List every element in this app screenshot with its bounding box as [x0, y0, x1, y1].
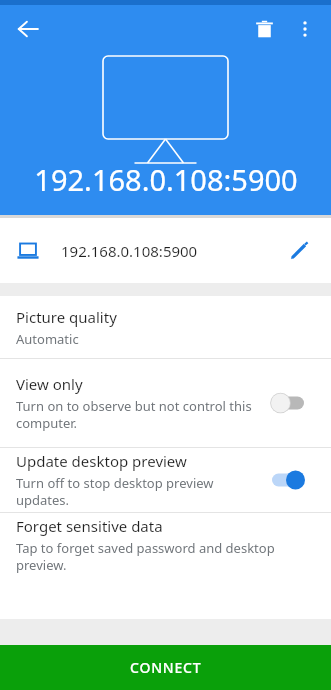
button[interactable]: Update desktop preview — [0, 448, 331, 512]
staticText: Automatic — [16, 330, 79, 348]
staticText: Turn on to observe but not control this … — [16, 397, 252, 432]
button[interactable]: Delete — [243, 8, 285, 50]
staticText: 192.168.0.108:5900 — [61, 241, 198, 261]
staticText: View only — [16, 374, 83, 394]
button[interactable]: CONNECT — [0, 645, 331, 690]
staticText: Turn off to stop desktop preview updates… — [16, 474, 257, 509]
button[interactable]: 192.168.0.108:5900 — [0, 218, 331, 283]
staticText: Update desktop preview — [16, 451, 187, 471]
button[interactable]: Off — [269, 389, 315, 417]
button[interactable]: Picture quality — [0, 296, 331, 358]
staticText: CONNECT — [130, 658, 202, 677]
staticText: 192.168.0.108:5900 — [34, 160, 298, 199]
staticText: Forget sensitive data — [16, 516, 163, 536]
button[interactable]: Forget sensitive data — [0, 513, 331, 577]
button[interactable]: Back — [8, 9, 48, 49]
button[interactable]: Edit address — [279, 231, 319, 271]
button[interactable]: View only — [0, 359, 331, 447]
button[interactable]: On — [269, 466, 315, 494]
staticText: Tap to forget saved password and desktop… — [16, 539, 315, 574]
staticText: Picture quality — [16, 307, 117, 327]
button[interactable]: More options — [285, 9, 325, 49]
